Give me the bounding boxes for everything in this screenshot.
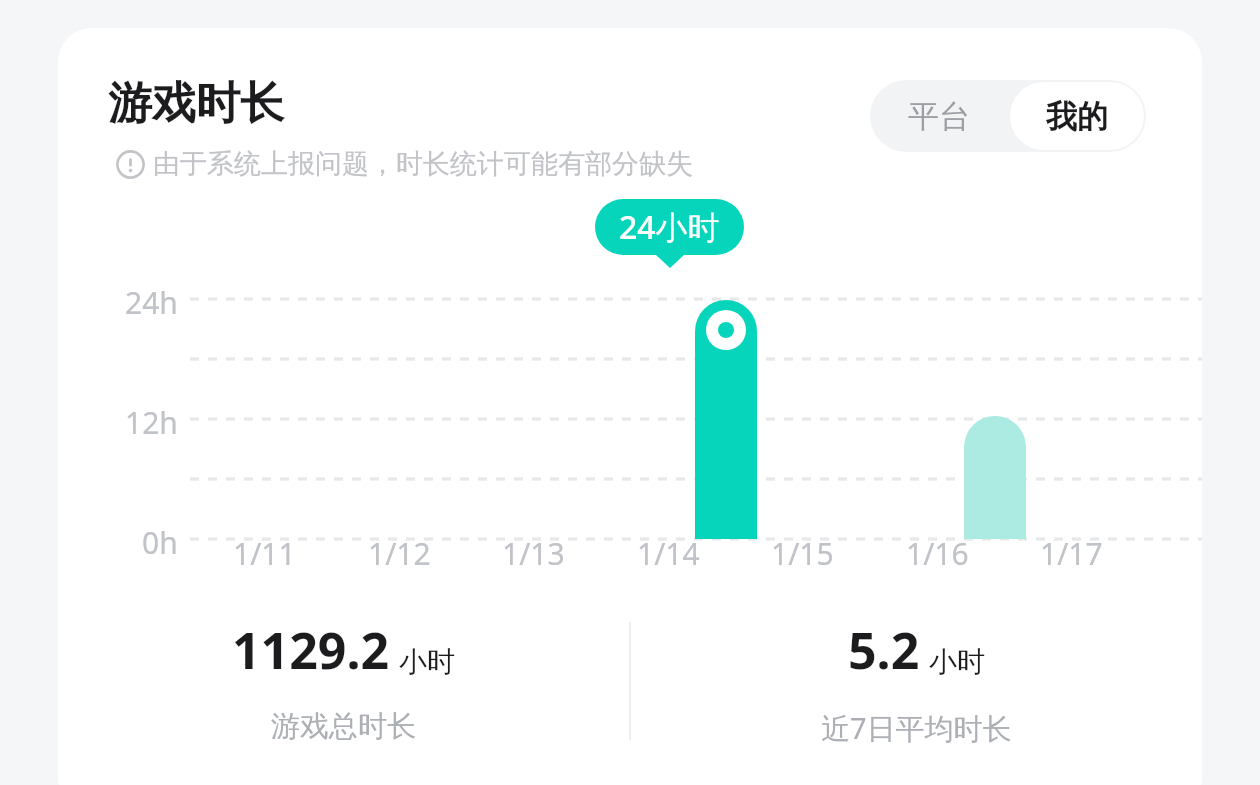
staticText: 游戏总时长 — [271, 708, 416, 745]
button[interactable]: 平台 — [870, 80, 1008, 152]
staticText: 1/16 — [906, 533, 969, 574]
button[interactable]: 我的 — [1008, 80, 1146, 152]
staticText: 24h — [125, 282, 178, 323]
staticText: 5.2 — [848, 616, 920, 684]
staticText: 1/14 — [637, 533, 700, 574]
staticText: 1/12 — [368, 533, 431, 574]
staticText: 平台 — [908, 97, 970, 136]
staticText: 由于系统上报问题，时长统计可能有部分缺失 — [153, 147, 693, 181]
staticText: 12h — [125, 402, 178, 443]
staticText: 24小时 — [619, 205, 720, 249]
staticText: 近7日平均时长 — [821, 708, 1012, 748]
staticText: 1/15 — [771, 533, 834, 574]
staticText: 1/13 — [502, 533, 565, 574]
staticText: 我的 — [1046, 97, 1108, 136]
staticText: 小时 — [929, 644, 985, 679]
staticText: 1/11 — [233, 533, 296, 574]
staticText: 小时 — [399, 644, 455, 679]
staticText: 1/17 — [1040, 533, 1103, 574]
other: Warning — [116, 150, 145, 179]
staticText: 0h — [142, 522, 178, 563]
staticText: 游戏时长 — [108, 76, 284, 131]
staticText: 1129.2 — [232, 616, 390, 684]
